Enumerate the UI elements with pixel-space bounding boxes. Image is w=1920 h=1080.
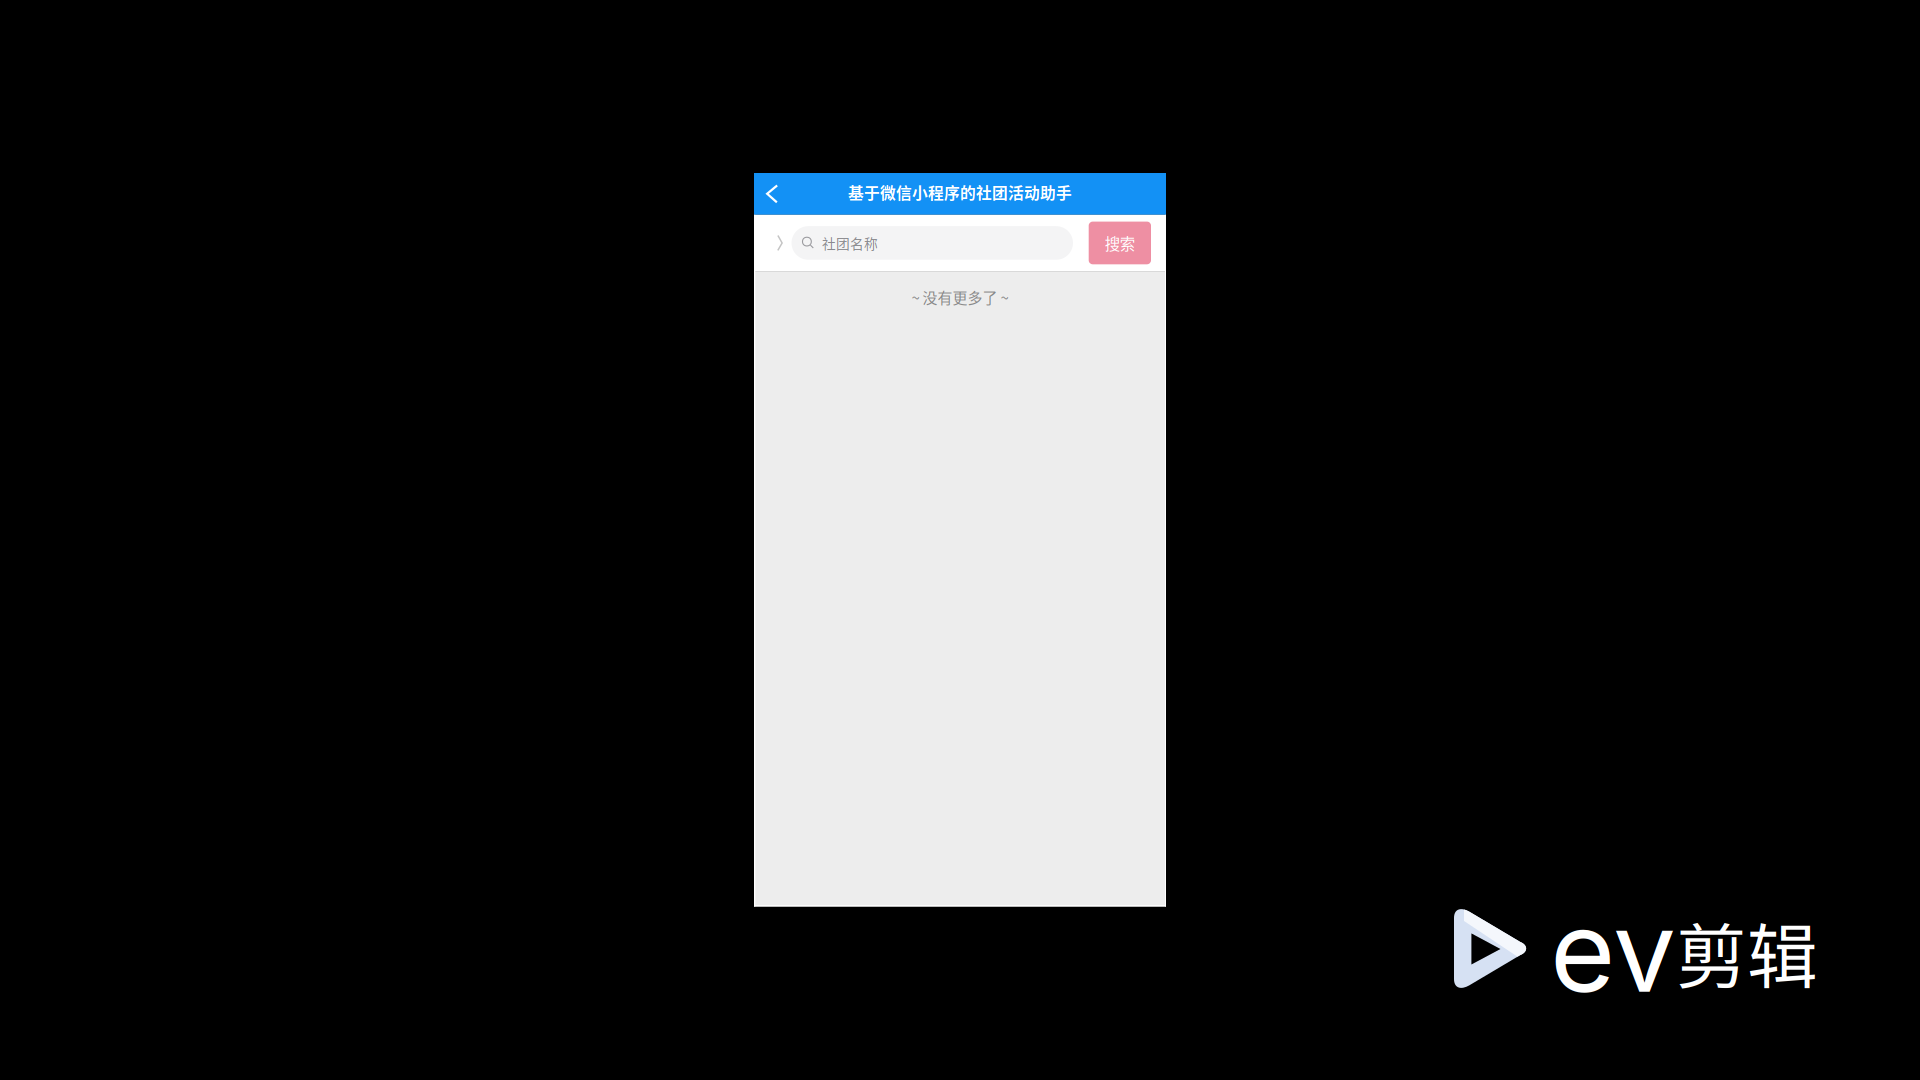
button[interactable]: Expand xyxy=(768,215,791,271)
staticText: ev xyxy=(1550,883,1676,1019)
button[interactable]: 搜索 xyxy=(1089,222,1151,264)
staticText: 社团名称 xyxy=(822,233,878,253)
staticText: ~ 没有更多了 ~ xyxy=(911,286,1008,308)
staticText: 基于微信小程序的社团活动助手 xyxy=(848,181,1072,203)
staticText: 剪辑 xyxy=(1676,901,1818,1003)
button[interactable]: Back xyxy=(754,173,790,215)
staticText: 搜索 xyxy=(1105,232,1135,254)
